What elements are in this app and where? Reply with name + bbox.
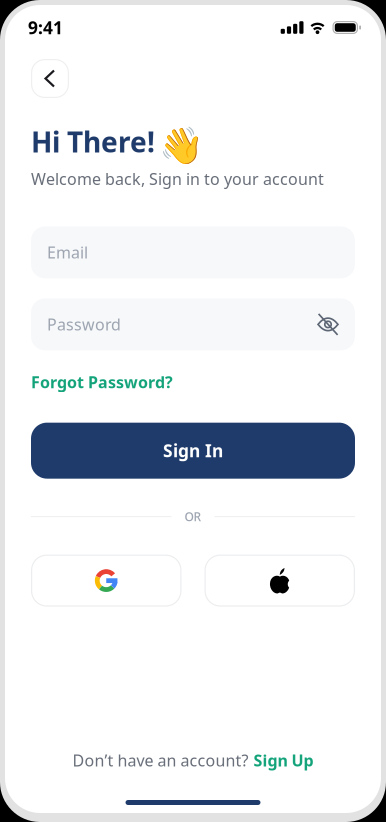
staticText: Forgot Password? <box>31 371 173 393</box>
staticText: Don’t have an account? <box>72 750 248 771</box>
staticText: Welcome back, Sign in to your account <box>31 168 324 189</box>
staticText: Sign Up <box>253 750 313 771</box>
button[interactable]: Sign Up <box>253 750 313 771</box>
button[interactable]: Sign In <box>31 423 355 479</box>
staticText: 9:41 <box>28 16 63 39</box>
staticText: Sign In <box>163 439 223 462</box>
staticText: Hi There! <box>31 123 155 160</box>
button[interactable]: Back <box>31 59 69 98</box>
button[interactable]: Show password <box>317 314 339 334</box>
staticText: Email <box>47 242 88 263</box>
staticText: OR <box>184 509 201 524</box>
button[interactable]: Sign in with Apple <box>204 555 355 607</box>
button[interactable]: Sign in with Google <box>31 555 181 607</box>
button[interactable]: Forgot Password? <box>31 371 173 393</box>
staticText: 👋 <box>159 125 204 166</box>
staticText: Password <box>47 314 121 335</box>
